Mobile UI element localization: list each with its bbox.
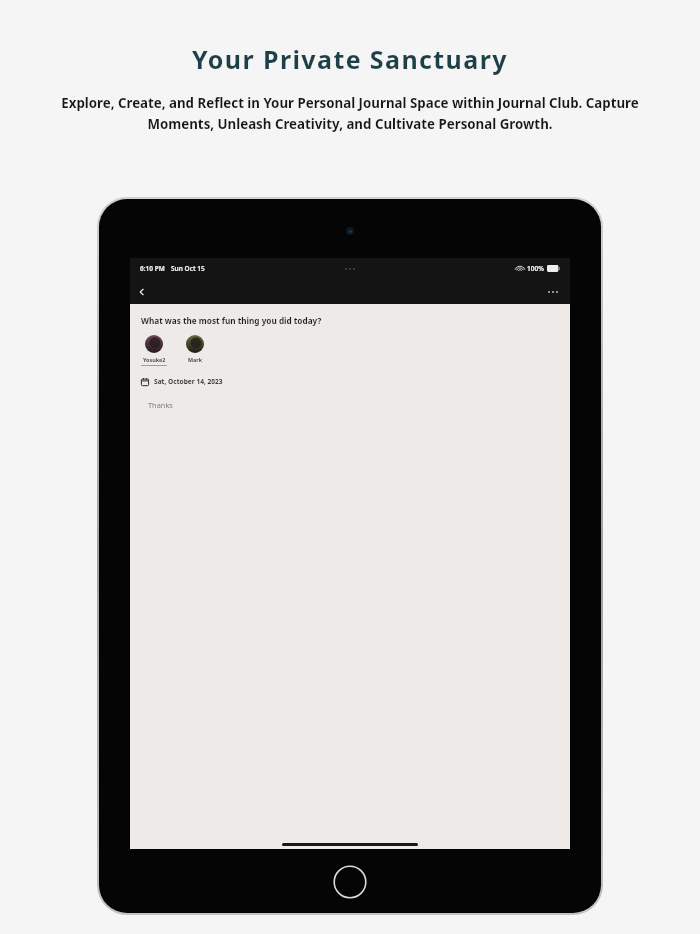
button[interactable]: Yosuke2 bbox=[141, 335, 167, 366]
button[interactable]: More options bbox=[542, 281, 564, 303]
staticText: 100% bbox=[527, 264, 544, 273]
staticText: What was the most fun thing you did toda… bbox=[141, 315, 322, 326]
staticText: Mark bbox=[188, 356, 203, 363]
staticText: Sat, October 14, 2023 bbox=[154, 377, 223, 386]
staticText: Yosuke2 bbox=[143, 356, 166, 363]
staticText: Your Private Sanctuary bbox=[192, 42, 508, 76]
button[interactable]: Home bbox=[333, 865, 367, 899]
staticText: Explore, Create, and Reflect in Your Per… bbox=[34, 94, 666, 133]
button[interactable]: Mark bbox=[186, 335, 204, 366]
staticText: Thanks bbox=[148, 400, 173, 410]
staticText: 6:10 PM bbox=[140, 264, 165, 273]
staticText: Sun Oct 15 bbox=[171, 264, 205, 273]
button[interactable]: Back bbox=[130, 280, 154, 304]
